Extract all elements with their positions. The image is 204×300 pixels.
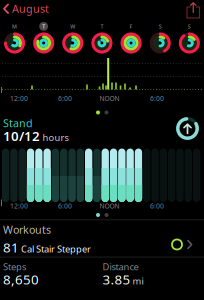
staticText: 8,650 — [3, 270, 39, 288]
staticText: S — [159, 23, 162, 30]
staticText: 6:00 — [150, 94, 164, 103]
staticText: NOON — [99, 94, 119, 103]
staticText: 6:00 — [58, 94, 72, 103]
staticText: W — [70, 23, 75, 30]
staticText: T — [100, 23, 103, 30]
button[interactable]: Share — [186, 1, 201, 19]
button[interactable]: Back — [2, 1, 49, 16]
staticText: 12:00 — [10, 201, 28, 210]
staticText: T — [42, 23, 45, 30]
staticText: hours — [42, 131, 68, 144]
staticText: M — [12, 23, 17, 30]
staticText: Cal Stair Stepper — [19, 243, 91, 255]
staticText: 81 — [3, 238, 19, 256]
staticText: 10/12 — [3, 127, 40, 145]
button[interactable]: S — [175, 14, 204, 60]
staticText: 12:00 — [10, 94, 28, 103]
button[interactable]: T — [29, 14, 58, 60]
staticText: Steps — [3, 260, 26, 273]
staticText: NOON — [99, 201, 119, 210]
button[interactable]: T — [87, 14, 116, 60]
button[interactable]: W — [58, 14, 87, 60]
staticText: Distance — [102, 260, 138, 273]
button[interactable]: 81 — [0, 234, 204, 255]
button[interactable]: F — [117, 14, 146, 60]
staticText: 6:00 — [58, 201, 72, 210]
staticText: Stand — [3, 116, 33, 130]
staticText: August — [12, 1, 49, 16]
staticText: 3.85 — [102, 270, 130, 288]
staticText: F — [130, 23, 133, 30]
staticText: S — [188, 23, 191, 30]
staticText: Workouts — [3, 222, 51, 237]
staticText: mi — [132, 275, 143, 287]
button[interactable]: M — [0, 14, 29, 60]
button[interactable]: S — [146, 14, 175, 60]
staticText: 6:00 — [150, 201, 164, 210]
